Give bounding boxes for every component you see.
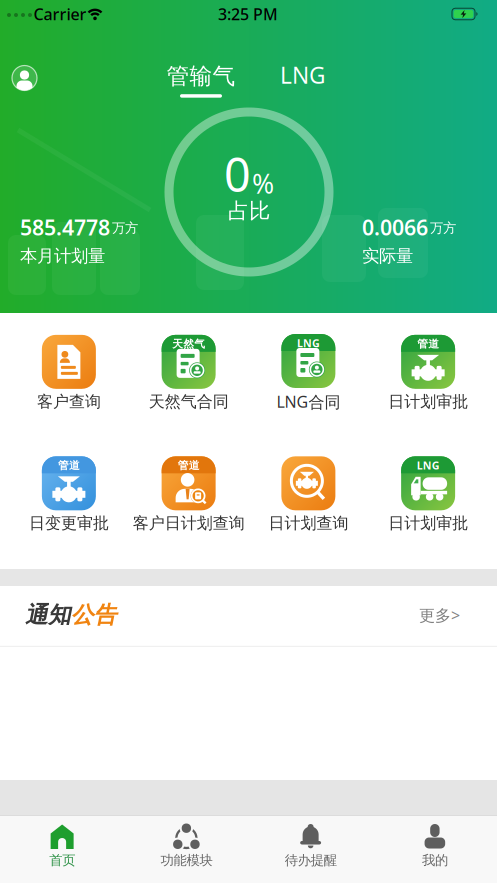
staticText: 3:25 PM (218, 3, 278, 25)
staticText: 日计划审批 (388, 513, 468, 533)
button[interactable]: LNG (280, 60, 326, 90)
staticText: 我的 (422, 852, 448, 868)
staticText: 本月计划量 (20, 245, 105, 267)
staticText: Carrier (33, 3, 86, 25)
button[interactable]: 管道 (129, 456, 249, 533)
staticText: 更多> (419, 604, 460, 625)
button[interactable]: 管道 (9, 456, 129, 533)
button[interactable]: 待办提醒 (248, 824, 373, 868)
staticText: 公告 (71, 601, 117, 629)
staticText: 客户查询 (37, 392, 101, 411)
button[interactable]: 功能模块 (124, 824, 248, 868)
button[interactable]: Profile (12, 65, 37, 90)
staticText: 天然气 (172, 337, 205, 350)
staticText: 待办提醒 (285, 852, 337, 868)
staticText: 管输气 (166, 62, 235, 90)
staticText: 首页 (49, 852, 75, 868)
staticText: 管道 (178, 459, 200, 472)
staticText: LNG合同 (276, 391, 340, 412)
staticText: 天然气合同 (149, 392, 229, 411)
button[interactable]: 首页 (0, 824, 124, 868)
staticText: LNG (297, 336, 320, 350)
button[interactable]: 管道 (368, 335, 488, 411)
button[interactable]: LNG (368, 456, 488, 533)
button[interactable]: 天然气 (129, 335, 249, 411)
button[interactable]: 客户查询 (9, 335, 129, 411)
staticText: 管道 (58, 459, 80, 472)
button[interactable]: 日计划查询 (248, 456, 368, 533)
staticText: 0.0066 (362, 213, 428, 241)
staticText: 实际量 (362, 245, 413, 267)
staticText: 万方 (430, 220, 456, 236)
staticText: LNG (280, 60, 326, 90)
staticText: 管道 (417, 337, 439, 350)
button[interactable]: 我的 (373, 824, 497, 868)
button[interactable]: LNG (248, 334, 368, 412)
staticText: 通知 (25, 601, 71, 629)
staticText: 日变更审批 (29, 513, 109, 533)
staticText: 585.4778 (20, 213, 110, 241)
staticText: 占比 (228, 198, 270, 224)
staticText: 功能模块 (160, 852, 212, 868)
staticText: 万方 (112, 220, 138, 236)
staticText: 日计划查询 (268, 513, 348, 533)
staticText: 日计划审批 (388, 392, 468, 411)
staticText: % (252, 166, 274, 201)
staticText: 0 (224, 143, 251, 205)
button[interactable]: 管输气 (166, 62, 235, 98)
staticText: LNG (417, 458, 440, 472)
staticText: 客户日计划查询 (133, 513, 245, 533)
button[interactable]: 更多> (419, 604, 460, 625)
